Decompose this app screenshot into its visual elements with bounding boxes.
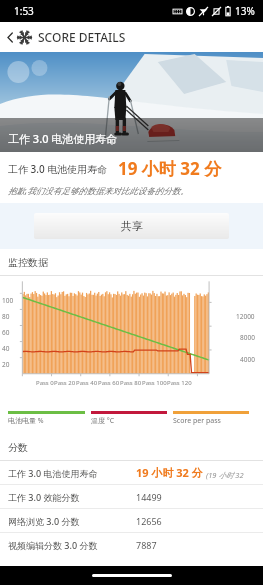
staticText: 8000 — [240, 333, 255, 342]
staticText: 工作 3.0 电池使用寿命 — [8, 467, 98, 479]
staticText: Pass 100 — [142, 379, 167, 387]
staticText: 分数 — [8, 441, 28, 454]
staticText: 12000 — [236, 312, 255, 321]
staticText: SCORE DETAILS — [38, 29, 126, 45]
staticText: 网络浏览 3.0 分数 — [8, 515, 80, 527]
staticText: 电池电量 % — [8, 416, 44, 426]
staticText: 抱歉,我们没有足够的数据来对比此设备的分数。 — [8, 185, 189, 197]
staticText: 工作 3.0 电池使用寿命 — [8, 162, 108, 176]
staticText: 20 — [2, 360, 10, 369]
button[interactable]: 网络浏览 3.0 分数 — [0, 509, 263, 533]
staticText: Pass 20 — [54, 379, 76, 387]
staticText: Pass 120 — [167, 379, 192, 387]
staticText: 监控数据 — [8, 256, 48, 269]
staticText: 40 — [2, 344, 10, 353]
staticText: Pass 60 — [98, 379, 120, 387]
button[interactable]: Back — [3, 30, 17, 44]
staticText: Pass 80 — [120, 379, 142, 387]
staticText: 1:53 — [14, 4, 34, 18]
button[interactable]: 工作 3.0 效能分数 — [0, 485, 263, 509]
staticText: 13% — [235, 4, 255, 18]
staticText: Pass 0 — [36, 379, 54, 387]
staticText: 视频编辑分数 3.0 分数 — [8, 539, 98, 551]
staticText: 工作 3.0 电池使用寿命 — [8, 131, 118, 146]
staticText: 80 — [2, 312, 10, 321]
staticText: 19 小时 32 分 — [118, 157, 222, 180]
staticText: 60 — [2, 328, 10, 337]
button[interactable]: 共享 — [34, 213, 229, 239]
button[interactable]: 视频编辑分数 3.0 分数 — [0, 533, 263, 556]
staticText: Score per pass — [173, 416, 221, 426]
staticText: 12656 — [136, 515, 162, 527]
staticText: 7887 — [136, 539, 157, 551]
staticText: (19 小时 32 分) — [206, 470, 255, 480]
staticText: 19 小时 32 分 — [136, 465, 203, 480]
staticText: 温度 °C — [91, 416, 115, 426]
staticText: 14499 — [136, 491, 162, 503]
staticText: 共享 — [121, 219, 143, 233]
staticText: Pass 40 — [76, 379, 98, 387]
staticText: 100 — [2, 296, 14, 305]
button[interactable]: 工作 3.0 电池使用寿命 — [0, 461, 263, 485]
staticText: 4000 — [240, 355, 255, 364]
staticText: 工作 3.0 效能分数 — [8, 491, 80, 503]
